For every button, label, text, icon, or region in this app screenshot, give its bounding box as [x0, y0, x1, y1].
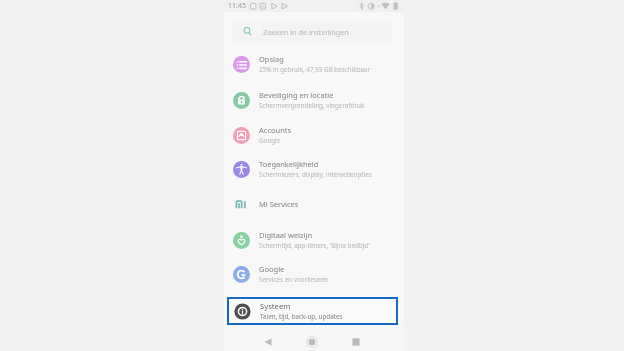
button[interactable]: Zoeken in de instellingen [232, 19, 392, 44]
staticText: 11:45 [228, 1, 246, 11]
button[interactable]: Accounts [224, 118, 404, 152]
staticText: Schermtijd, app-timers, 'Bijna bedtijd' [259, 241, 370, 250]
button[interactable]: Recent apps [334, 327, 378, 351]
staticText: Schermlezers, display, interactieopties [259, 170, 372, 179]
staticText: Talen, tijd, back-up, updates [260, 312, 343, 321]
staticText: Zoeken in de instellingen [263, 27, 349, 37]
staticText: 25% in gebruik, 47,93 GB beschikbaar [259, 65, 371, 74]
button[interactable]: Digitaal welzijn [224, 223, 404, 257]
staticText: Google [259, 136, 281, 145]
button[interactable]: Beveiliging en locatie [224, 83, 404, 117]
staticText: Systeem [260, 301, 291, 311]
button[interactable]: Home [290, 327, 334, 351]
button[interactable]: Opslag [224, 47, 404, 81]
staticText: Opslag [259, 54, 284, 64]
button[interactable]: Mi Services [224, 187, 404, 221]
staticText: Mi Services [259, 199, 299, 209]
button[interactable]: Back [246, 327, 290, 351]
staticText: Beveiliging en locatie [259, 90, 334, 100]
staticText: Accounts [259, 125, 292, 135]
staticText: Google [259, 264, 285, 274]
staticText: Toegankelijkheid [259, 159, 319, 169]
button[interactable]: Toegankelijkheid [224, 152, 404, 186]
button[interactable]: Google [224, 257, 404, 291]
staticText: Schermvergrendeling, vingerafdruk [259, 101, 365, 110]
staticText: Services en voorkeuren [259, 275, 328, 284]
button[interactable]: Systeem [229, 299, 396, 323]
staticText: Digitaal welzijn [259, 230, 313, 240]
